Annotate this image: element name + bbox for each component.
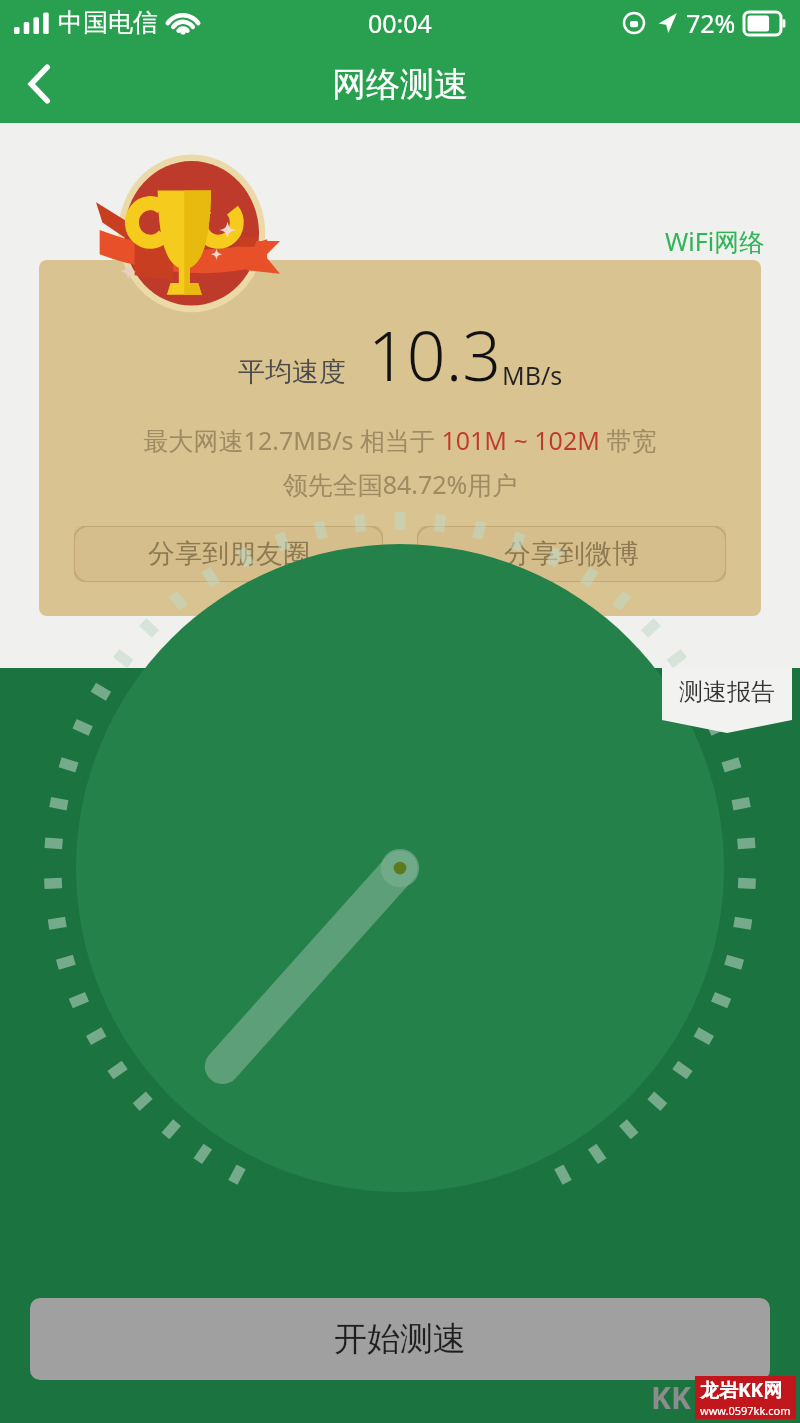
staticText: 10.3	[368, 308, 502, 401]
staticText: 领先全国84.72%用户	[39, 467, 761, 501]
staticText: WiFi网络	[665, 224, 765, 258]
staticText: www.0597kk.com	[700, 1403, 791, 1418]
button[interactable]: 分享到微博	[417, 526, 726, 582]
button[interactable]: Back	[0, 45, 80, 123]
staticText: 网络测速	[332, 63, 468, 106]
staticText: 00:04	[368, 6, 432, 40]
staticText: 平均速度	[238, 355, 346, 389]
staticText: 分享到朋友圈	[148, 537, 310, 571]
staticText: 测速报告	[679, 677, 775, 707]
button[interactable]: 分享到朋友圈	[74, 526, 383, 582]
staticText: 最大网速12.7MB/s 相当于 101M ~ 102M 带宽	[39, 423, 761, 457]
staticText: 72%	[686, 6, 736, 40]
button[interactable]: 开始测速	[30, 1298, 770, 1380]
staticText: KK	[651, 1377, 691, 1418]
staticText: MB/s	[502, 358, 563, 392]
staticText: 分享到微博	[504, 537, 639, 571]
staticText: 龙岩KK网	[700, 1377, 783, 1403]
staticText: 中国电信	[58, 7, 158, 38]
staticText: 开始测速	[334, 1318, 466, 1360]
button[interactable]: 测速报告	[662, 668, 792, 733]
